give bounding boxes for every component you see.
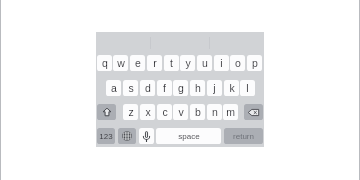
- button[interactable]: y: [180, 55, 195, 71]
- staticText: h: [195, 82, 201, 94]
- button[interactable]: z: [123, 104, 138, 120]
- staticText: v: [178, 106, 184, 118]
- button[interactable]: t: [164, 55, 179, 71]
- button[interactable]: 123: [97, 128, 115, 144]
- staticText: q: [102, 57, 108, 69]
- staticText: p: [252, 57, 258, 69]
- staticText: return: [233, 132, 254, 141]
- staticText: m: [226, 106, 235, 118]
- staticText: w: [117, 57, 125, 69]
- button[interactable]: m: [223, 104, 238, 120]
- button[interactable]: Backspace: [244, 104, 263, 120]
- button[interactable]: u: [197, 55, 212, 71]
- staticText: space: [178, 132, 200, 141]
- button[interactable]: d: [140, 80, 155, 96]
- staticText: y: [185, 57, 191, 69]
- button[interactable]: s: [123, 80, 138, 96]
- button[interactable]: f: [157, 80, 172, 96]
- button[interactable]: a: [106, 80, 121, 96]
- staticText: o: [235, 57, 241, 69]
- button[interactable]: q: [97, 55, 112, 71]
- button[interactable]: n: [207, 104, 222, 120]
- button[interactable]: o: [230, 55, 245, 71]
- button[interactable]: c: [157, 104, 172, 120]
- button[interactable]: v: [173, 104, 188, 120]
- button[interactable]: e: [130, 55, 145, 71]
- button[interactable]: space: [156, 128, 221, 144]
- button[interactable]: Shift: [97, 104, 116, 120]
- button[interactable]: h: [190, 80, 205, 96]
- button[interactable]: p: [247, 55, 262, 71]
- button[interactable]: j: [207, 80, 222, 96]
- staticText: i: [220, 57, 223, 69]
- button[interactable]: return: [224, 128, 263, 144]
- staticText: 123: [99, 132, 113, 141]
- staticText: e: [135, 57, 141, 69]
- button[interactable]: l: [240, 80, 255, 96]
- button[interactable]: k: [224, 80, 239, 96]
- staticText: n: [212, 106, 218, 118]
- button[interactable]: b: [190, 104, 205, 120]
- button[interactable]: r: [147, 55, 162, 71]
- staticText: k: [229, 82, 235, 94]
- button[interactable]: Switch keyboard: [118, 128, 136, 144]
- staticText: x: [145, 106, 151, 118]
- staticText: j: [213, 82, 216, 94]
- staticText: b: [195, 106, 201, 118]
- staticText: g: [178, 82, 184, 94]
- staticText: d: [145, 82, 151, 94]
- staticText: z: [128, 106, 134, 118]
- button[interactable]: Dictation: [139, 128, 154, 144]
- staticText: s: [128, 82, 134, 94]
- button[interactable]: x: [140, 104, 155, 120]
- staticText: r: [153, 57, 157, 69]
- staticText: u: [202, 57, 208, 69]
- staticText: t: [170, 57, 173, 69]
- staticText: l: [246, 82, 249, 94]
- button[interactable]: g: [173, 80, 188, 96]
- staticText: f: [163, 82, 166, 94]
- button[interactable]: i: [214, 55, 229, 71]
- staticText: c: [162, 106, 168, 118]
- staticText: a: [111, 82, 117, 94]
- button[interactable]: w: [113, 55, 128, 71]
